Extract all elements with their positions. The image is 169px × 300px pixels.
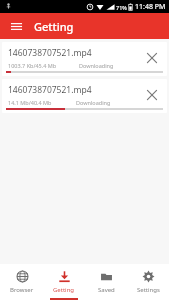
staticText: Browser xyxy=(10,286,34,294)
staticText: Downloading xyxy=(76,99,111,106)
button[interactable]: Settings xyxy=(127,264,169,300)
staticText: 14.1 Mb/40.4 Mb xyxy=(8,99,52,106)
staticText: Settings xyxy=(137,286,160,294)
button[interactable]: Cancel download xyxy=(141,47,163,69)
staticText: 11:48 PM xyxy=(135,2,166,12)
staticText: Getting xyxy=(53,286,75,294)
button[interactable]: Getting xyxy=(43,264,85,300)
staticText: 1460738707521.mp4 xyxy=(8,84,92,96)
button[interactable]: Browser xyxy=(0,264,43,300)
staticText: Getting xyxy=(34,19,74,34)
button[interactable]: 1460738707521.mp4 xyxy=(2,42,167,76)
staticText: 1003.7 Kb/45.4 Mb xyxy=(8,62,57,69)
staticText: 1460738707521.mp4 xyxy=(8,47,92,59)
button[interactable]: 1460738707521.mp4 xyxy=(2,79,167,113)
button[interactable]: Open navigation drawer xyxy=(6,16,26,36)
staticText: Downloading xyxy=(79,62,114,69)
staticText: Saved xyxy=(98,286,115,294)
button[interactable]: Cancel download xyxy=(141,84,163,106)
button[interactable]: Saved xyxy=(85,264,127,300)
staticText: 71% xyxy=(116,4,127,11)
